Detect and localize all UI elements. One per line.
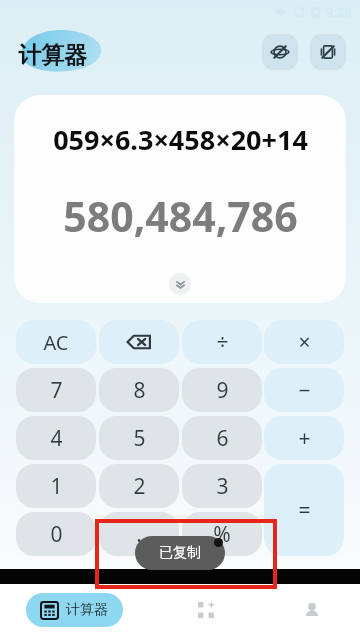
staticText: = xyxy=(298,496,311,525)
staticText: % xyxy=(213,520,231,549)
staticText: 1 xyxy=(50,472,63,501)
button[interactable]: 2 xyxy=(99,464,179,508)
staticText: × xyxy=(298,328,311,357)
staticText: 计算器 xyxy=(18,41,87,70)
button[interactable]: − xyxy=(264,368,344,412)
button[interactable]: % xyxy=(182,512,262,556)
button[interactable]: Sound off xyxy=(262,34,298,70)
staticText: 580,484,786 xyxy=(63,188,298,244)
button[interactable]: Widgets xyxy=(184,590,228,630)
staticText: 2 xyxy=(133,472,146,501)
button[interactable]: 5 xyxy=(99,416,179,460)
staticText: 3 xyxy=(216,472,229,501)
button[interactable]: 7 xyxy=(16,368,96,412)
button[interactable]: + xyxy=(264,416,344,460)
button[interactable]: Expand history xyxy=(169,273,191,295)
button[interactable]: × xyxy=(264,320,344,364)
button[interactable]: 6 xyxy=(182,416,262,460)
button[interactable]: ÷ xyxy=(182,320,262,364)
staticText: 059×6.3×458×20+14 xyxy=(53,121,308,158)
button[interactable]: Backspace xyxy=(99,320,179,364)
staticText: − xyxy=(298,376,311,405)
staticText: 4 xyxy=(50,424,63,453)
button[interactable]: Profile xyxy=(290,590,334,630)
button[interactable]: 0 xyxy=(16,512,96,556)
staticText: 5 xyxy=(133,424,146,453)
staticText: 7 xyxy=(50,376,63,405)
staticText: 计算器 xyxy=(66,601,108,619)
staticText: 9 xyxy=(216,376,229,405)
button[interactable]: 059×6.3×458×20+14 xyxy=(14,95,346,303)
staticText: 已复制 xyxy=(159,544,201,562)
button[interactable]: = xyxy=(264,464,344,556)
button[interactable]: 1 xyxy=(16,464,96,508)
staticText: 8 xyxy=(133,376,146,405)
button[interactable]: 计算器 xyxy=(26,593,123,627)
button[interactable]: 3 xyxy=(182,464,262,508)
button[interactable]: AC xyxy=(16,320,96,364)
staticText: 6 xyxy=(216,424,229,453)
staticText: ÷ xyxy=(216,328,229,357)
button[interactable]: Vibration off xyxy=(310,34,346,70)
button[interactable]: 4 xyxy=(16,416,96,460)
staticText: 0 xyxy=(50,520,63,549)
button[interactable]: 8 xyxy=(99,368,179,412)
staticText: AC xyxy=(43,329,69,356)
button[interactable]: . xyxy=(99,512,179,556)
button[interactable]: 9 xyxy=(182,368,262,412)
staticText: 9:36 xyxy=(326,3,352,21)
staticText: . xyxy=(136,520,142,549)
staticText: + xyxy=(298,424,311,453)
